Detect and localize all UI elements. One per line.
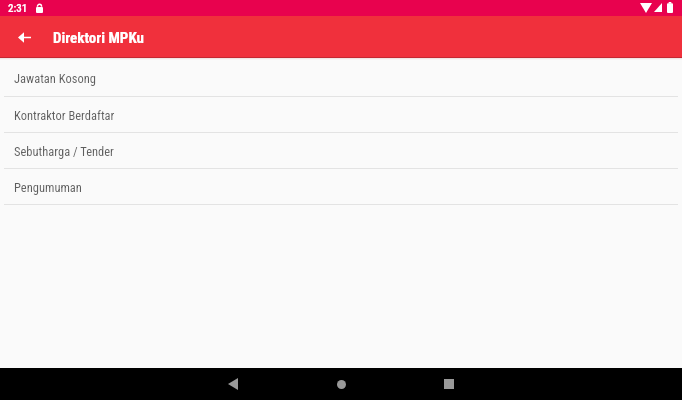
staticText: Kontraktor Berdaftar [14, 108, 115, 123]
button[interactable]: Pengumuman [0, 169, 682, 204]
button[interactable]: Back [179, 368, 287, 400]
staticText: Sebutharga / Tender [14, 144, 114, 159]
staticText: Direktori MPKu [53, 29, 144, 47]
button[interactable]: Jawatan Kosong [0, 58, 682, 96]
staticText: Pengumuman [14, 180, 82, 195]
button[interactable]: Sebutharga / Tender [0, 133, 682, 168]
staticText: Jawatan Kosong [14, 71, 96, 86]
button[interactable]: Home [287, 368, 395, 400]
button[interactable]: Recent apps [395, 368, 503, 400]
staticText: 2:31 [8, 2, 28, 15]
button[interactable]: Kontraktor Berdaftar [0, 97, 682, 132]
button[interactable]: Back [3, 16, 45, 58]
